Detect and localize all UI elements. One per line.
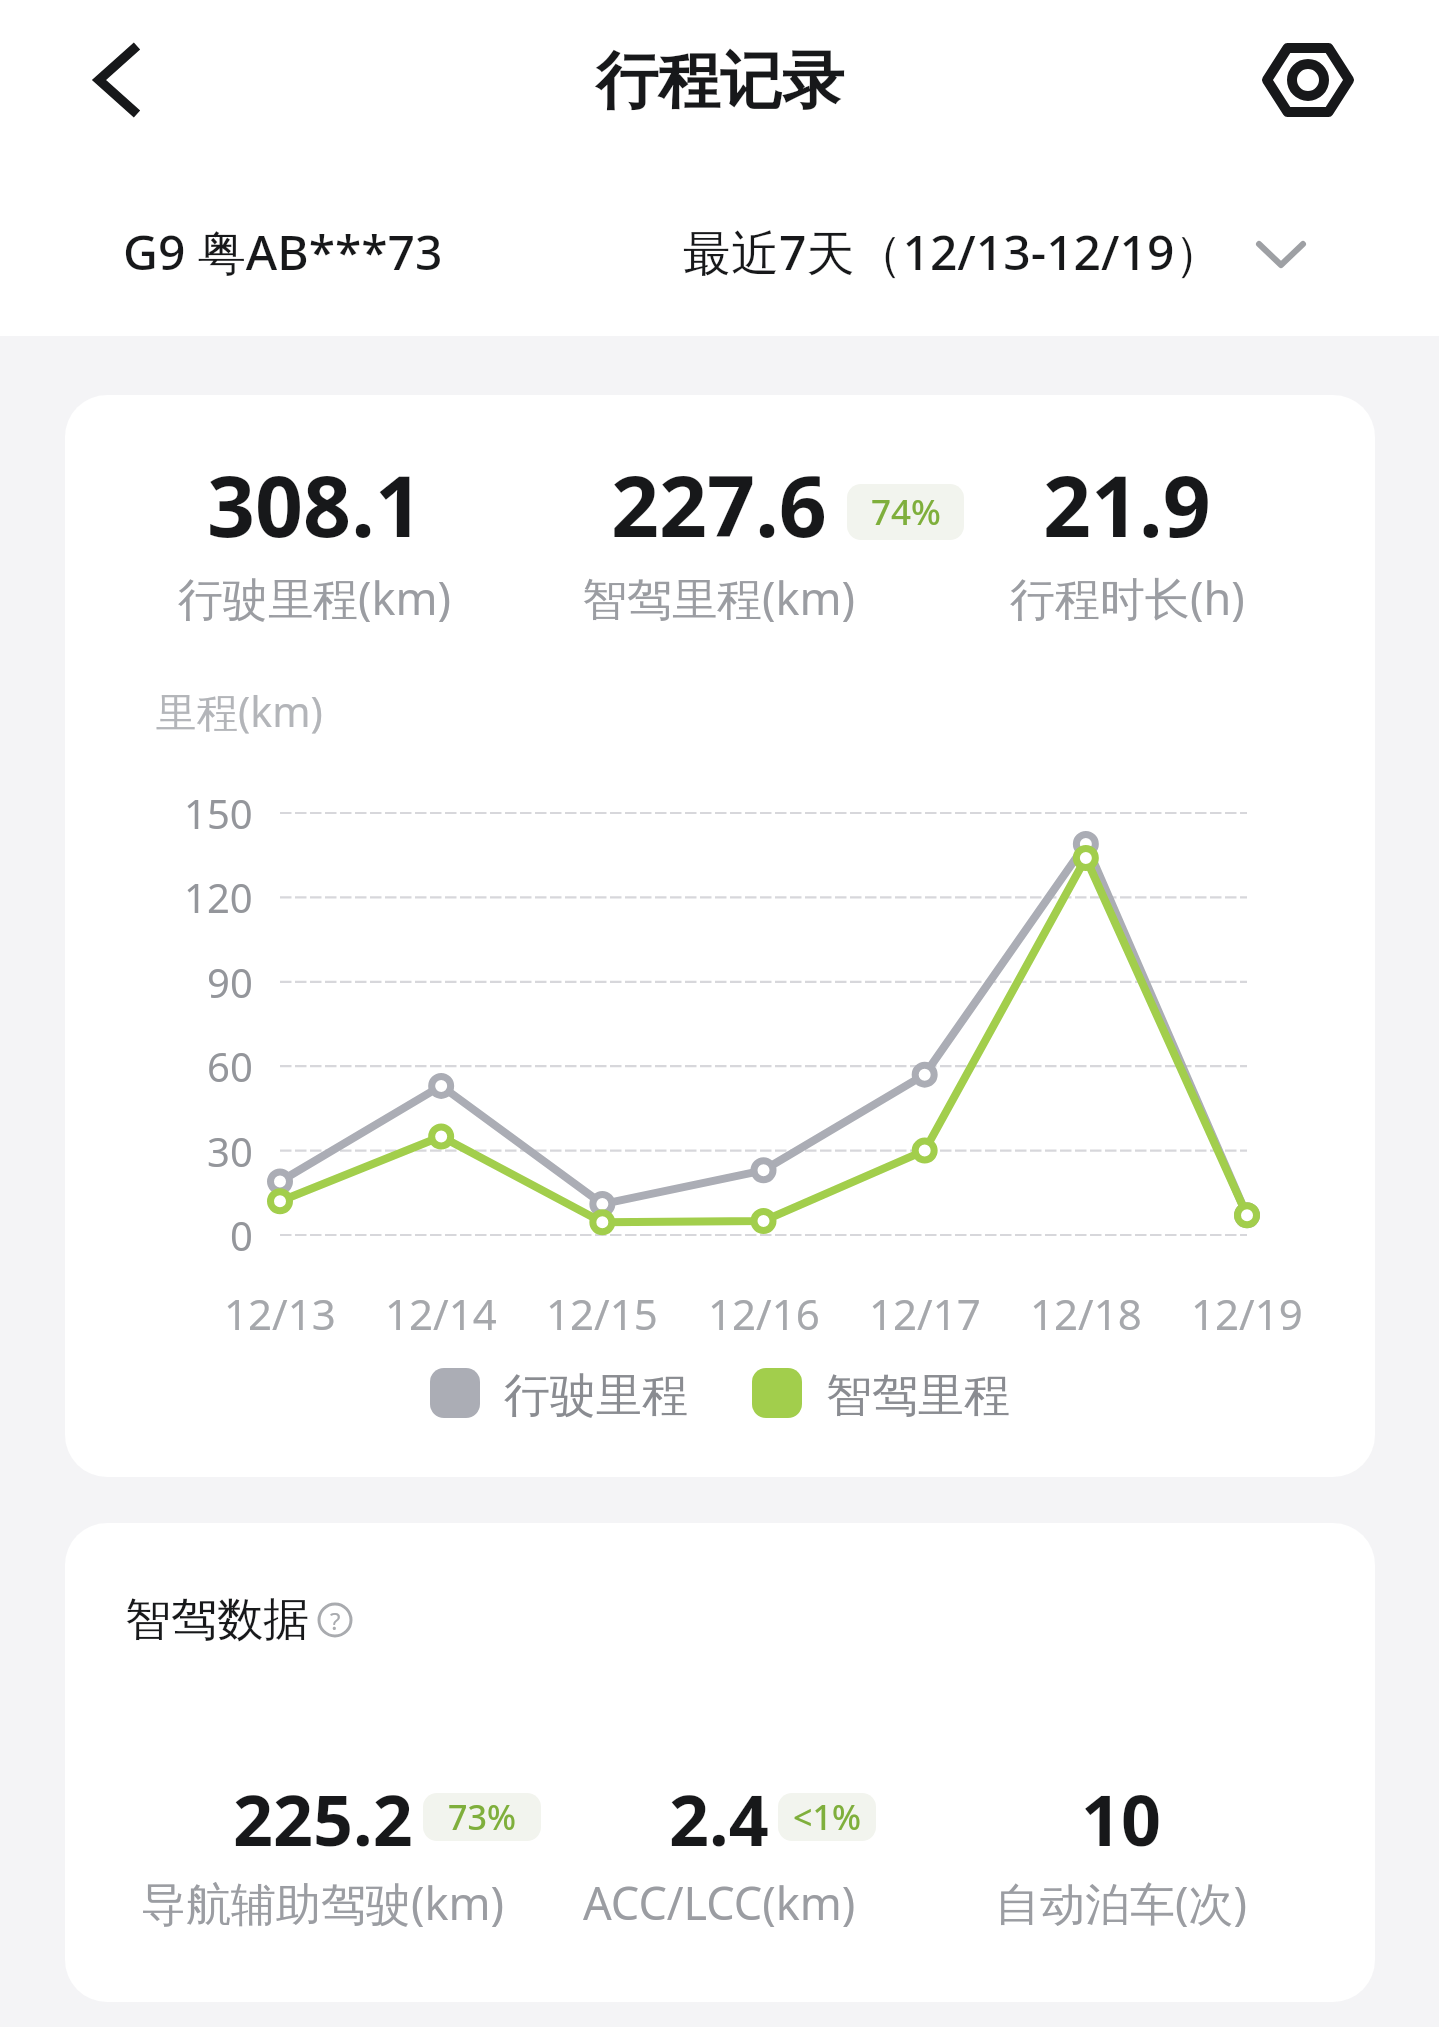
staticText: ? (330, 1604, 341, 1637)
staticText: ACC/LCC(km) (583, 1872, 856, 1933)
staticText: 150 (184, 786, 253, 840)
staticText: 120 (184, 870, 253, 924)
staticText: G9 粤AB***73 (123, 219, 443, 285)
staticText: 74% (871, 488, 941, 536)
staticText: 90 (207, 955, 253, 1009)
staticText: 行程记录 (596, 42, 844, 120)
staticText: 12/13 (224, 1285, 336, 1342)
staticText: 12/17 (869, 1285, 981, 1342)
staticText: 导航辅助驾驶(km) (141, 1872, 505, 1933)
staticText: 12/18 (1030, 1285, 1142, 1342)
staticText: 12/15 (546, 1285, 658, 1342)
staticText: 227.6 (611, 447, 827, 561)
staticText: <1% (793, 1794, 861, 1840)
staticText: 行驶里程(km) (178, 567, 452, 628)
staticText: 0 (230, 1208, 253, 1262)
staticText: 12/19 (1191, 1285, 1303, 1342)
staticText: 最近7天（12/13-12/19） (683, 219, 1223, 285)
staticText: 73% (448, 1794, 516, 1840)
staticText: 12/16 (708, 1285, 820, 1342)
button[interactable] (1248, 20, 1368, 140)
staticText: 智驾里程(km) (582, 567, 856, 628)
button[interactable] (62, 25, 172, 135)
staticText: 30 (207, 1124, 253, 1178)
staticText: 自动泊车(次) (995, 1872, 1248, 1933)
button[interactable]: 最近7天（12/13-12/19） (660, 210, 1340, 294)
staticText: 2.4 (669, 1771, 769, 1866)
staticText: 12/14 (385, 1285, 497, 1342)
staticText: 21.9 (1043, 447, 1211, 561)
staticText: 10 (1081, 1771, 1162, 1866)
staticText: 智驾里程 (826, 1367, 1010, 1419)
staticText: 225.2 (233, 1771, 413, 1866)
staticText: 行程时长(h) (1010, 567, 1245, 628)
staticText: 智驾数据 (125, 1591, 309, 1649)
staticText: 里程(km) (156, 683, 323, 739)
staticText: 行驶里程 (504, 1367, 688, 1419)
staticText: 308.1 (207, 447, 423, 561)
button[interactable]: G9 粤AB***73 (100, 210, 443, 294)
staticText: 60 (207, 1039, 253, 1093)
